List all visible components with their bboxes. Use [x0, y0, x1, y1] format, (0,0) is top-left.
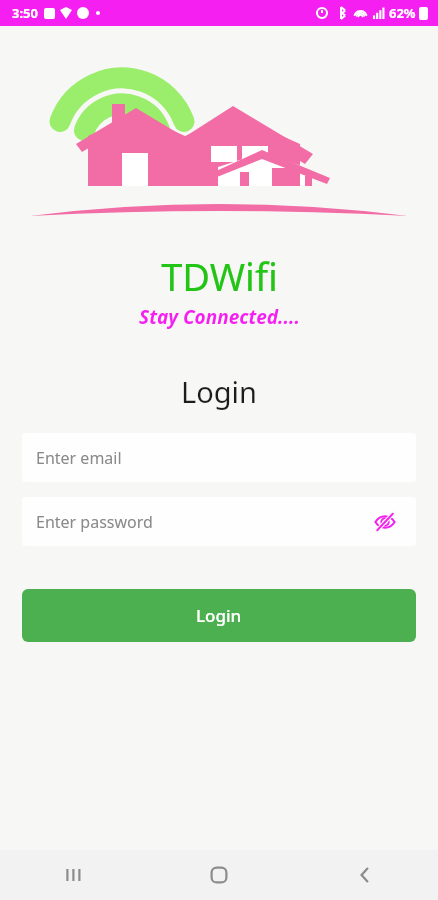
button[interactable]: Recents — [0, 850, 146, 900]
button[interactable]: Enter password — [22, 497, 416, 546]
staticText: Enter email — [36, 447, 122, 469]
button[interactable]: Back — [292, 850, 438, 900]
staticText: Login — [181, 372, 257, 411]
staticText: Enter password — [36, 511, 153, 533]
button[interactable]: Show password — [368, 505, 402, 539]
button[interactable]: Login — [22, 589, 416, 642]
staticText: 62% — [389, 4, 416, 22]
button[interactable]: Home — [146, 850, 292, 900]
staticText: Login — [196, 604, 242, 627]
staticText: 3:50 — [12, 4, 38, 22]
staticText: Stay Connected.... — [139, 304, 300, 330]
button[interactable]: Enter email — [22, 433, 416, 482]
staticText: TDWifi — [161, 250, 278, 302]
